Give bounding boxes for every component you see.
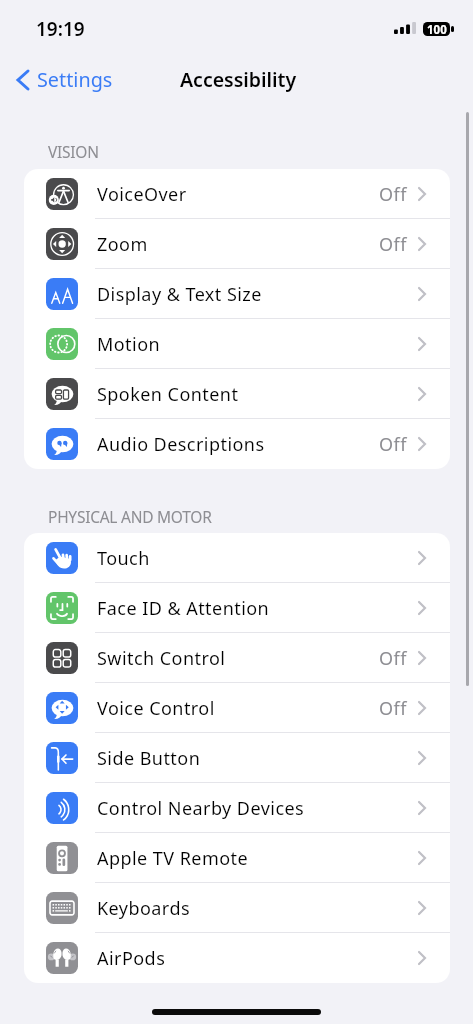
staticText: Apple TV Remote bbox=[97, 846, 249, 871]
staticText: Control Nearby Devices bbox=[97, 796, 305, 821]
staticText: 100 bbox=[427, 22, 447, 38]
button[interactable]: AirPods bbox=[24, 933, 450, 983]
staticText: Display & Text Size bbox=[97, 282, 262, 307]
button[interactable]: Zoom bbox=[24, 219, 450, 269]
staticText: Off bbox=[379, 696, 407, 721]
button[interactable]: Touch bbox=[24, 533, 450, 583]
button[interactable]: Settings bbox=[12, 60, 119, 99]
staticText: Face ID & Attention bbox=[97, 596, 270, 621]
staticText: Switch Control bbox=[97, 646, 226, 671]
button[interactable]: Keyboards bbox=[24, 883, 450, 933]
button[interactable]: Spoken Content bbox=[24, 369, 450, 419]
staticText: Off bbox=[379, 432, 407, 457]
staticText: Zoom bbox=[97, 232, 148, 257]
staticText: VoiceOver bbox=[97, 182, 187, 207]
button[interactable]: Switch Control bbox=[24, 633, 450, 683]
button[interactable]: Apple TV Remote bbox=[24, 833, 450, 883]
button[interactable]: VoiceOver bbox=[24, 169, 450, 219]
staticText: Accessibility bbox=[180, 66, 297, 93]
staticText: Off bbox=[379, 182, 407, 207]
staticText: Spoken Content bbox=[97, 382, 239, 407]
button[interactable]: Control Nearby Devices bbox=[24, 783, 450, 833]
staticText: Keyboards bbox=[97, 896, 190, 921]
staticText: PHYSICAL AND MOTOR bbox=[48, 506, 212, 527]
staticText: Off bbox=[379, 646, 407, 671]
button[interactable]: Display & Text Size bbox=[24, 269, 450, 319]
staticText: Touch bbox=[97, 546, 150, 571]
button[interactable]: Voice Control bbox=[24, 683, 450, 733]
staticText: Side Button bbox=[97, 746, 201, 771]
staticText: 19:19 bbox=[36, 16, 85, 42]
button[interactable]: Side Button bbox=[24, 733, 450, 783]
staticText: Motion bbox=[97, 332, 161, 357]
button[interactable]: Motion bbox=[24, 319, 450, 369]
button[interactable]: Face ID & Attention bbox=[24, 583, 450, 633]
staticText: Off bbox=[379, 232, 407, 257]
staticText: VISION bbox=[48, 141, 99, 162]
staticText: Audio Descriptions bbox=[97, 432, 265, 457]
staticText: Voice Control bbox=[97, 696, 215, 721]
staticText: AirPods bbox=[97, 946, 166, 971]
button[interactable]: Audio Descriptions bbox=[24, 419, 450, 469]
staticText: Settings bbox=[37, 66, 113, 93]
